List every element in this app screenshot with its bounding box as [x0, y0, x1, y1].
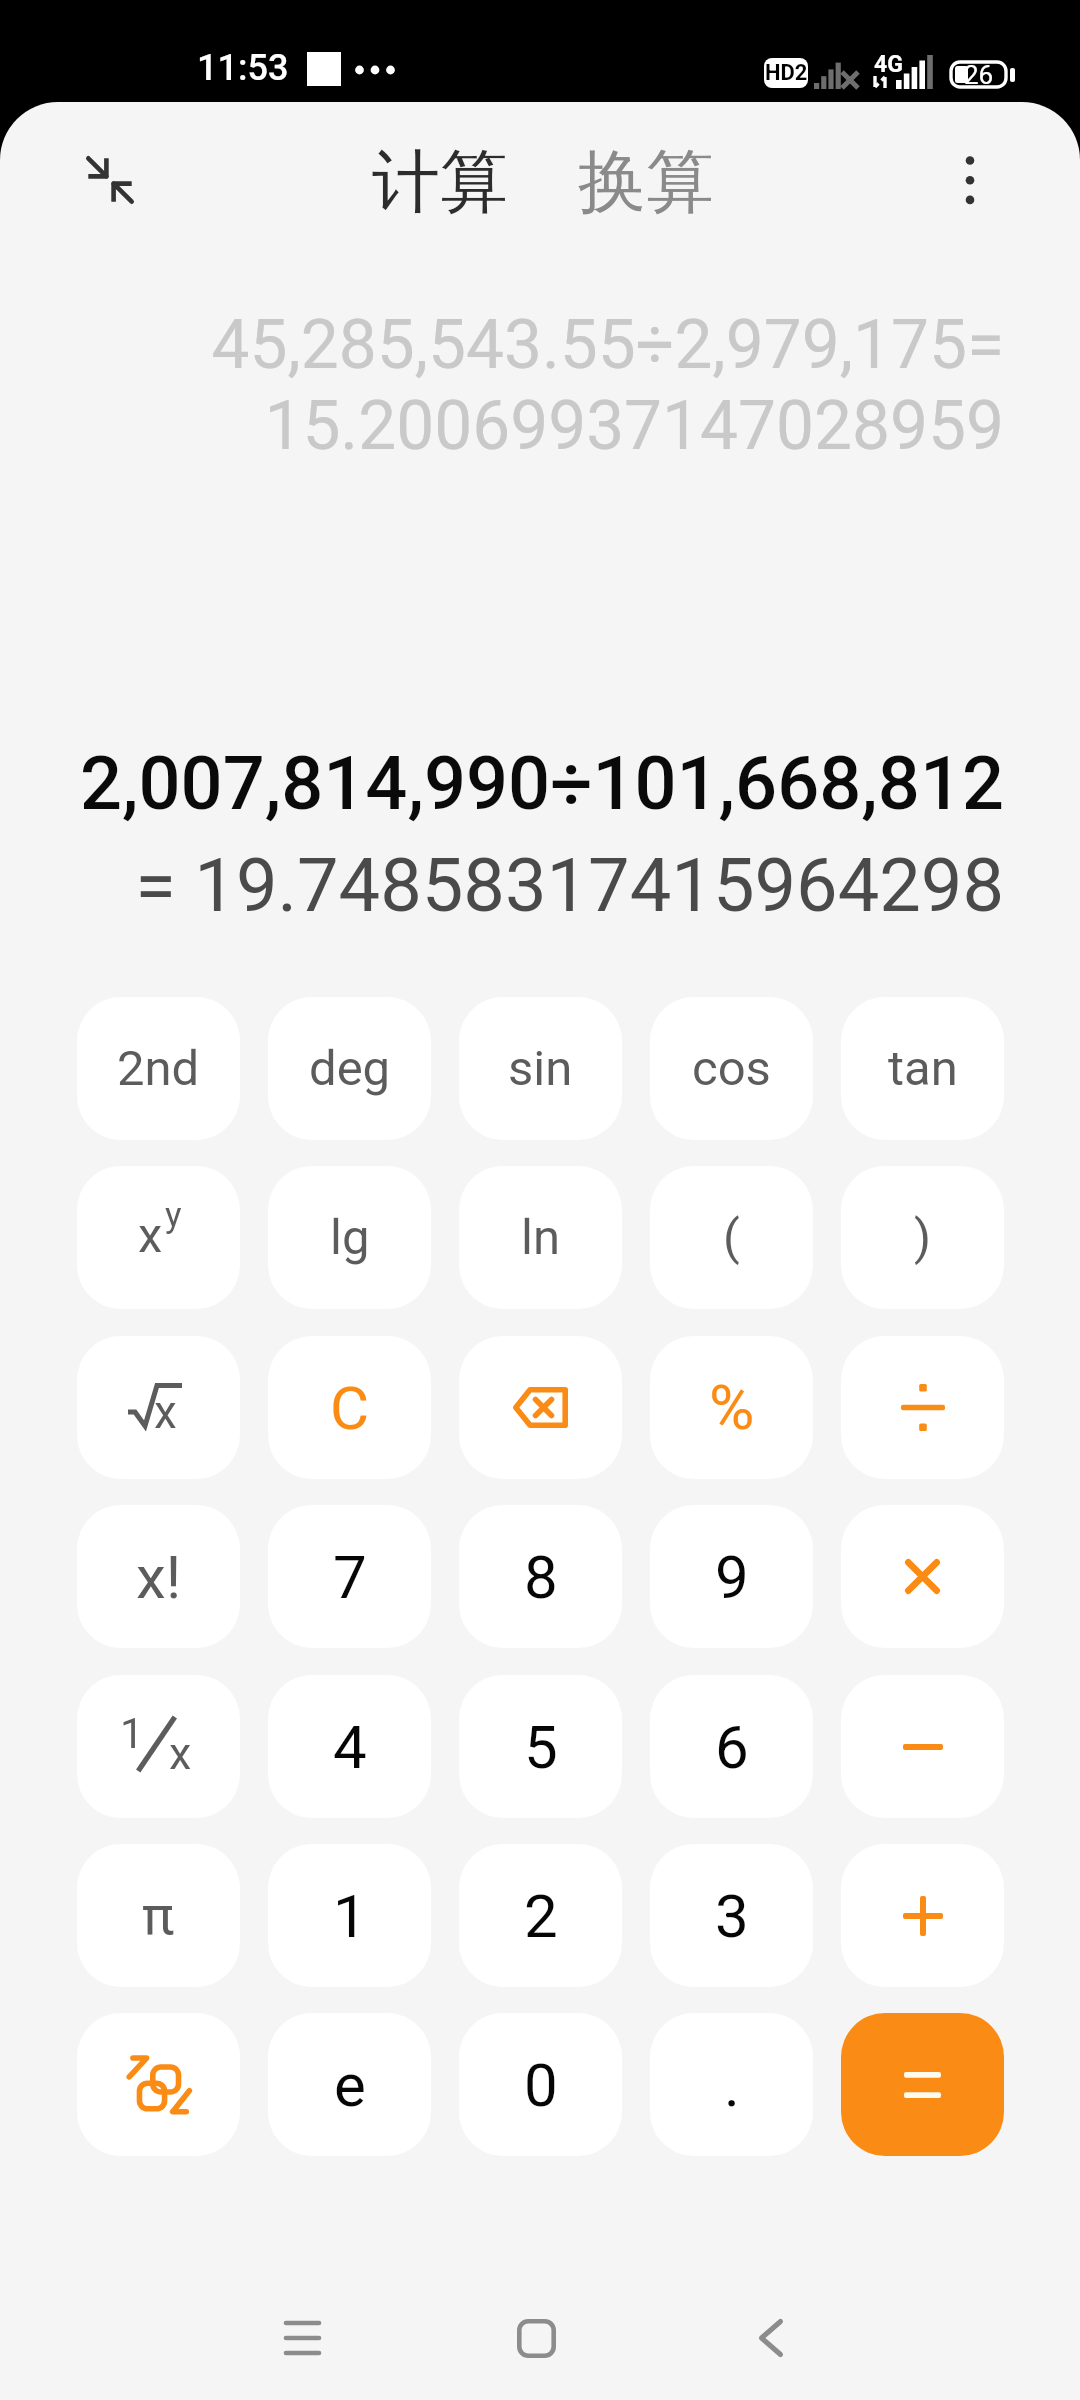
button[interactable]: 9	[650, 1505, 813, 1648]
staticText: 45,285,543.55÷2,979,175= 15.200699371470…	[0, 305, 1004, 466]
button[interactable]: 6	[650, 1675, 813, 1818]
button[interactable]: x!	[77, 1505, 240, 1648]
button[interactable]: 计算	[366, 128, 514, 238]
staticText: 3	[715, 1881, 749, 1951]
button[interactable]: 换算	[572, 128, 720, 238]
button[interactable]: 0	[459, 2013, 622, 2156]
staticText: 4G	[874, 51, 903, 78]
staticText: HD2	[765, 60, 808, 86]
button[interactable]: (	[650, 1166, 813, 1309]
staticText: 11:53	[197, 47, 289, 89]
staticText: tan	[888, 1040, 958, 1097]
staticText: e	[334, 2050, 366, 2120]
button[interactable]: C	[268, 1336, 431, 1479]
button[interactable]: 8	[459, 1505, 622, 1648]
staticText: 1	[120, 1709, 144, 1758]
button[interactable]: π	[77, 1844, 240, 1987]
button[interactable]: )	[841, 1166, 1004, 1309]
button[interactable]: sin	[459, 997, 622, 1140]
button[interactable]: Divide	[841, 1336, 1004, 1479]
button[interactable]: 5	[459, 1675, 622, 1818]
button[interactable]: Plus	[841, 1844, 1004, 1987]
button[interactable]: 3	[650, 1844, 813, 1987]
staticText: deg	[309, 1040, 391, 1097]
staticText: 2,007,814,990÷101,668,812	[0, 740, 1004, 827]
staticText: 换算	[578, 140, 714, 226]
staticText: 9	[715, 1542, 749, 1612]
button[interactable]: 4	[268, 1675, 431, 1818]
button[interactable]: tan	[841, 997, 1004, 1140]
staticText: x!	[136, 1542, 182, 1612]
staticText: 26	[964, 60, 994, 89]
staticText: 2	[524, 1881, 558, 1951]
staticText: ln	[521, 1209, 560, 1266]
staticText: x	[138, 1207, 163, 1264]
staticText: = 19.74858317415964298	[0, 842, 1004, 929]
button[interactable]: .	[650, 2013, 813, 2156]
staticText: 1	[333, 1881, 367, 1951]
button[interactable]: Square root	[77, 1336, 240, 1479]
button[interactable]: e	[268, 2013, 431, 2156]
button[interactable]: Multiply	[841, 1505, 1004, 1648]
staticText: (	[723, 1209, 740, 1266]
staticText: .	[724, 2050, 740, 2120]
staticText: cos	[692, 1040, 771, 1097]
button[interactable]: cos	[650, 997, 813, 1140]
button[interactable]: Delete	[459, 1336, 622, 1479]
staticText: %	[709, 1371, 755, 1444]
staticText: x	[169, 1727, 192, 1780]
staticText: 5	[524, 1712, 558, 1782]
button[interactable]: One over x	[77, 1675, 240, 1818]
staticText: C	[330, 1373, 370, 1443]
staticText: 7	[333, 1542, 367, 1612]
staticText: lg	[330, 1209, 370, 1266]
staticText: π	[142, 1884, 175, 1947]
button[interactable]: Minus	[841, 1675, 1004, 1818]
button[interactable]: lg	[268, 1166, 431, 1309]
button[interactable]: deg	[268, 997, 431, 1140]
staticText: 6	[715, 1712, 749, 1782]
button[interactable]: 1	[268, 1844, 431, 1987]
button[interactable]: Home	[476, 2278, 596, 2398]
staticText: 8	[524, 1542, 558, 1612]
button[interactable]: 2	[459, 1844, 622, 1987]
staticText: 2nd	[117, 1040, 200, 1097]
button[interactable]: Equals	[841, 2013, 1004, 2156]
button[interactable]: x to the power y	[77, 1166, 240, 1309]
staticText: sin	[508, 1040, 573, 1097]
staticText: x	[154, 1385, 177, 1429]
button[interactable]: Collapse	[64, 134, 156, 226]
button[interactable]: 2nd	[77, 997, 240, 1140]
staticText: )	[914, 1209, 932, 1266]
button[interactable]: Recent apps	[242, 2278, 362, 2398]
button[interactable]: ln	[459, 1166, 622, 1309]
staticText: y	[165, 1195, 182, 1236]
button[interactable]: More options	[924, 134, 1016, 226]
button[interactable]: Unit converter	[77, 2013, 240, 2156]
button[interactable]: 7	[268, 1505, 431, 1648]
button[interactable]: Back	[711, 2278, 831, 2398]
button[interactable]: %	[650, 1336, 813, 1479]
staticText: 4	[333, 1712, 367, 1782]
staticText: 0	[524, 2050, 558, 2120]
staticText: 计算	[372, 140, 508, 226]
